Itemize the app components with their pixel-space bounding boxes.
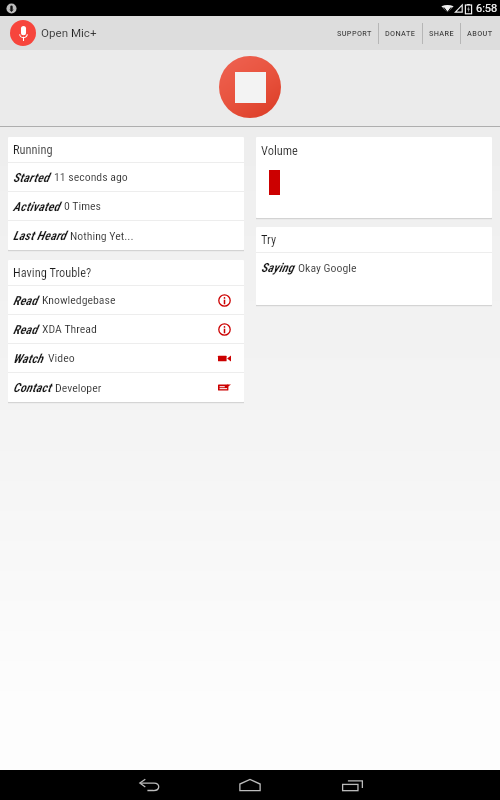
staticText: SHARE bbox=[429, 29, 454, 38]
staticText: Running bbox=[13, 142, 53, 157]
button[interactable]: Read bbox=[8, 286, 244, 315]
button[interactable]: Saying bbox=[256, 253, 492, 282]
button[interactable]: Last Heard bbox=[8, 221, 244, 250]
staticText: Started bbox=[13, 170, 50, 185]
button[interactable]: Home bbox=[227, 770, 273, 800]
staticText: Knowledgebase bbox=[42, 293, 116, 307]
staticText: Nothing Yet... bbox=[70, 229, 134, 243]
button[interactable]: Contact bbox=[8, 373, 244, 402]
button[interactable]: Read bbox=[8, 315, 244, 344]
button[interactable]: Open Mic+ app icon bbox=[10, 20, 36, 46]
staticText: SUPPORT bbox=[337, 29, 372, 38]
staticText: 0 Times bbox=[64, 199, 101, 213]
staticText: Watch bbox=[13, 351, 44, 366]
staticText: Read bbox=[13, 322, 38, 337]
button[interactable]: Stop listening bbox=[219, 56, 281, 118]
staticText: Okay Google bbox=[298, 261, 357, 275]
staticText: 11 seconds ago bbox=[54, 170, 128, 184]
staticText: Volume bbox=[261, 143, 298, 158]
button[interactable]: Activated bbox=[8, 192, 244, 221]
staticText: Open Mic+ bbox=[41, 26, 97, 40]
button[interactable]: Watch bbox=[8, 344, 244, 373]
staticText: Read bbox=[13, 293, 38, 308]
button[interactable]: Started bbox=[8, 163, 244, 192]
staticText: XDA Thread bbox=[42, 322, 97, 336]
staticText: ABOUT bbox=[467, 29, 493, 38]
staticText: Contact bbox=[13, 380, 51, 395]
staticText: Saying bbox=[261, 260, 294, 275]
staticText: Activated bbox=[13, 199, 60, 214]
button[interactable]: DONATE bbox=[379, 16, 422, 50]
button[interactable]: Back bbox=[126, 770, 172, 800]
staticText: DONATE bbox=[385, 29, 416, 38]
button[interactable]: Recent apps bbox=[329, 770, 375, 800]
button[interactable]: SUPPORT bbox=[331, 16, 378, 50]
button[interactable]: ABOUT bbox=[461, 16, 499, 50]
staticText: Having Trouble? bbox=[13, 265, 92, 280]
staticText: 6:58 bbox=[476, 2, 498, 15]
button[interactable]: SHARE bbox=[423, 16, 460, 50]
staticText: Try bbox=[261, 232, 277, 247]
staticText: Video bbox=[48, 351, 75, 365]
staticText: Last Heard bbox=[13, 228, 66, 243]
staticText: Developer bbox=[55, 381, 102, 395]
